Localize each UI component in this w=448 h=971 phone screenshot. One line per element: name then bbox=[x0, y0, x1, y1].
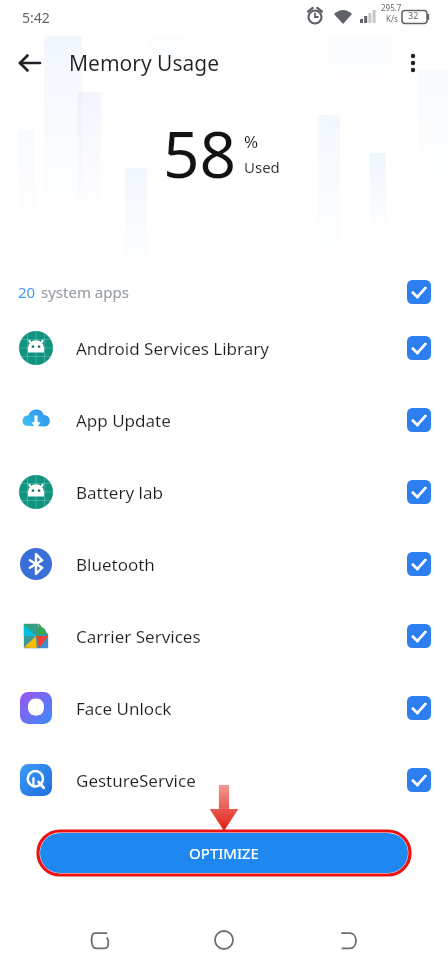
staticText: Memory Usage bbox=[69, 49, 220, 78]
staticText: Carrier Services bbox=[76, 625, 402, 648]
staticText: system apps bbox=[41, 282, 402, 302]
staticText: OPTIMIZE bbox=[189, 843, 259, 863]
button[interactable]: Carrier Services bbox=[0, 600, 448, 672]
staticText: 58 bbox=[163, 110, 237, 197]
button[interactable]: Selected bbox=[402, 403, 436, 437]
button[interactable]: OPTIMIZE bbox=[40, 833, 408, 873]
staticText: Android Services Library bbox=[76, 337, 402, 360]
button[interactable]: More options bbox=[393, 43, 433, 83]
button[interactable]: Selected bbox=[402, 331, 436, 365]
button[interactable]: Face Unlock bbox=[0, 672, 448, 744]
button[interactable]: Bluetooth bbox=[0, 528, 448, 600]
button[interactable]: GestureService bbox=[0, 744, 448, 816]
button[interactable]: Battery lab bbox=[0, 456, 448, 528]
staticText: App Update bbox=[76, 409, 402, 432]
button[interactable]: Recents bbox=[76, 916, 124, 964]
button[interactable]: Back bbox=[324, 916, 372, 964]
staticText: K/s bbox=[386, 13, 398, 24]
staticText: Bluetooth bbox=[76, 553, 402, 576]
staticText: Used bbox=[244, 157, 280, 177]
button[interactable]: Selected bbox=[402, 475, 436, 509]
staticText: Face Unlock bbox=[76, 697, 402, 720]
staticText: % bbox=[244, 130, 259, 153]
staticText: Battery lab bbox=[76, 481, 402, 504]
button[interactable]: Home bbox=[200, 916, 248, 964]
staticText: 5:42 bbox=[22, 8, 50, 27]
button[interactable]: Back bbox=[10, 43, 50, 83]
staticText: 295.7 bbox=[381, 2, 402, 13]
button[interactable]: Selected bbox=[402, 275, 436, 309]
staticText: 20 bbox=[18, 282, 36, 302]
button[interactable]: 20 bbox=[0, 272, 448, 312]
button[interactable]: Selected bbox=[402, 547, 436, 581]
button[interactable]: Selected bbox=[402, 691, 436, 725]
button[interactable]: Android Services Library bbox=[0, 312, 448, 384]
button[interactable]: App Update bbox=[0, 384, 448, 456]
staticText: GestureService bbox=[76, 769, 402, 792]
button[interactable]: Selected bbox=[402, 763, 436, 797]
button[interactable]: Selected bbox=[402, 619, 436, 653]
staticText: 32 bbox=[408, 9, 419, 21]
